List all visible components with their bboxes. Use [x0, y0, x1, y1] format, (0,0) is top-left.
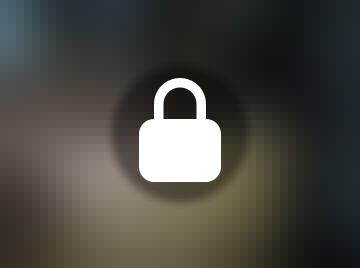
button[interactable]: Unlock: [92, 46, 268, 222]
